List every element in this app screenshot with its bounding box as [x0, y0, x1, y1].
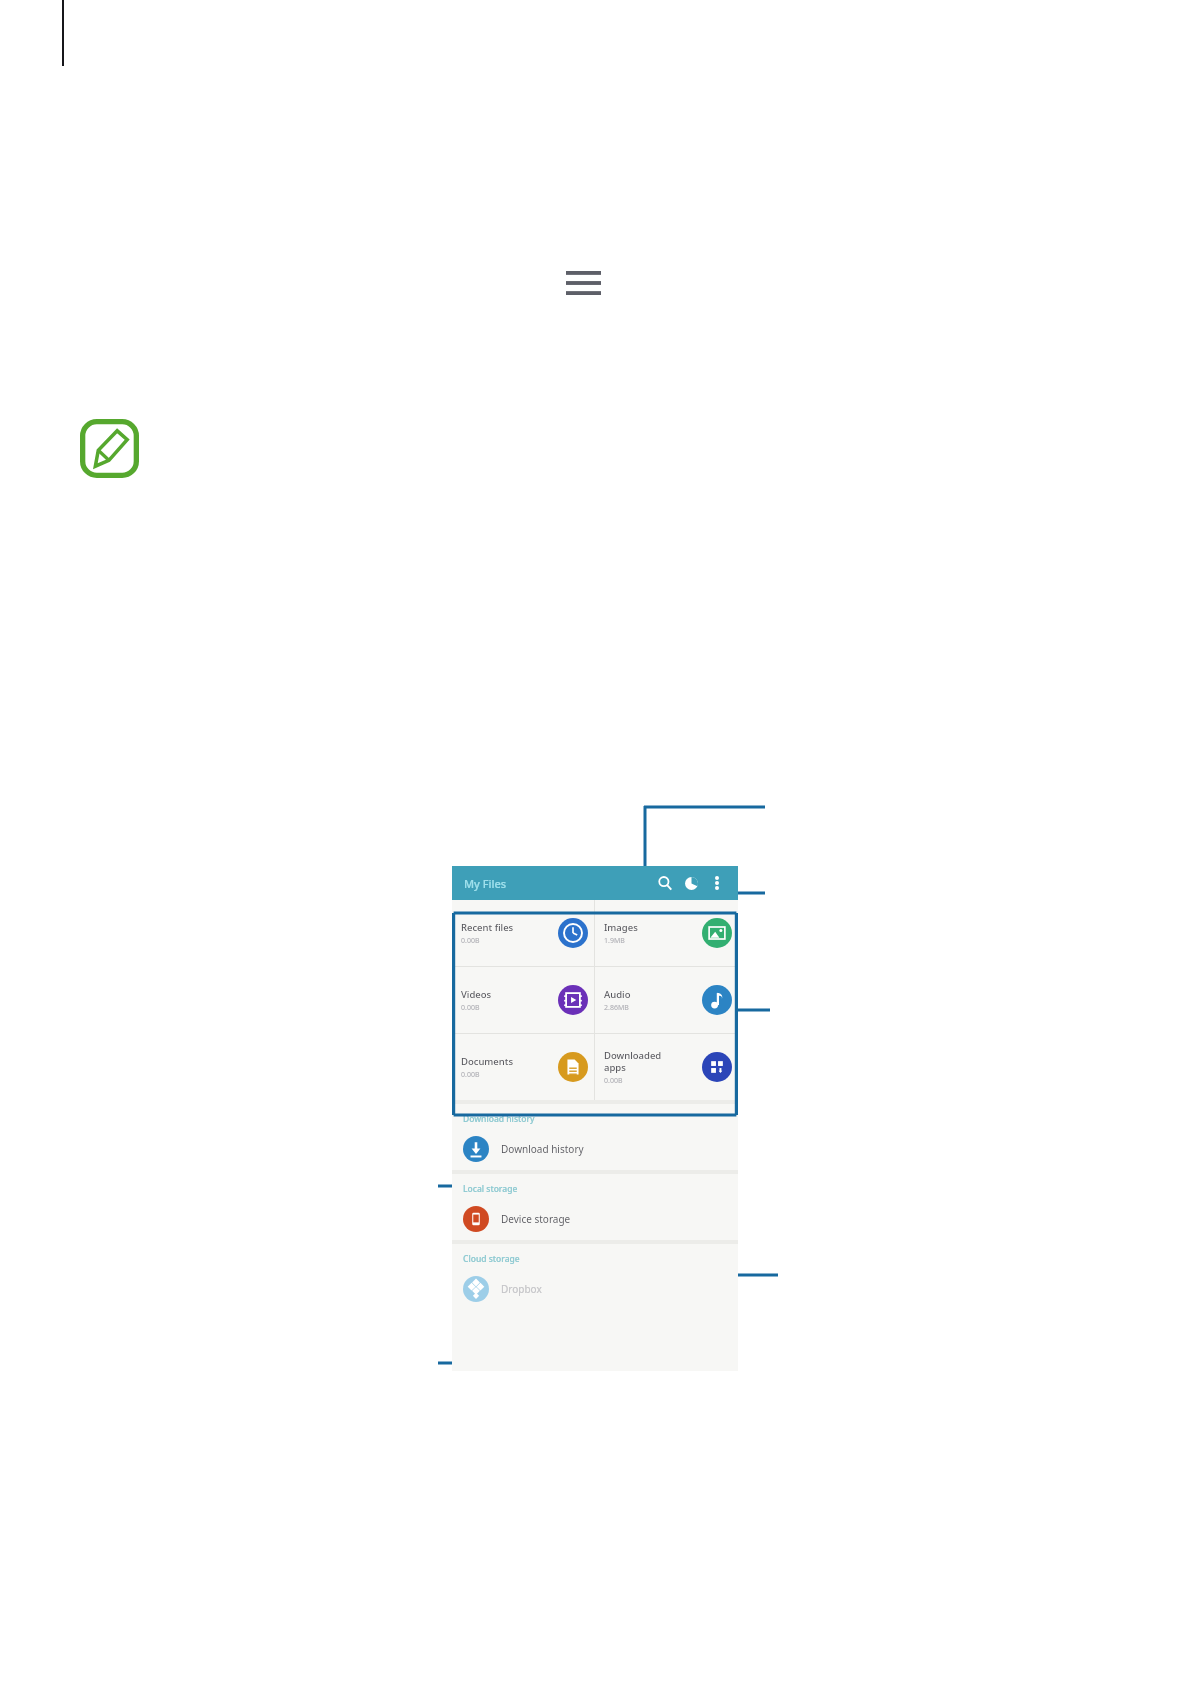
staticText: 0.00B — [461, 1070, 480, 1080]
staticText: Audio — [604, 988, 631, 1001]
staticText: Download history — [463, 1113, 535, 1125]
staticText: 1.9MB — [604, 936, 625, 946]
staticText: Recent files — [461, 921, 514, 934]
button[interactable]: Audio — [595, 967, 738, 1033]
button[interactable]: Dropbox — [452, 1268, 738, 1310]
staticText: Download history — [501, 1142, 584, 1156]
button[interactable]: Download history — [452, 1128, 738, 1170]
button[interactable]: Storage usage — [678, 870, 704, 896]
button[interactable]: Videos — [452, 967, 594, 1033]
staticText: Documents — [461, 1055, 514, 1068]
button[interactable]: Search — [652, 870, 678, 896]
staticText: 0.00B — [604, 1076, 623, 1086]
button[interactable]: Recent files — [452, 900, 594, 966]
staticText: 0.00B — [461, 936, 480, 946]
button[interactable]: More options — [704, 870, 730, 896]
staticText: 2.86MB — [604, 1003, 629, 1013]
staticText: Device storage — [501, 1212, 571, 1226]
staticText: Videos — [461, 988, 492, 1001]
button[interactable]: Device storage — [452, 1198, 738, 1240]
staticText: Images — [604, 921, 638, 934]
staticText: Dropbox — [501, 1282, 542, 1296]
staticText: Local storage — [463, 1183, 518, 1195]
staticText: My Files — [464, 876, 507, 891]
button[interactable]: Menu — [566, 271, 601, 295]
staticText: 0.00B — [461, 1003, 480, 1013]
staticText: Cloud storage — [463, 1253, 520, 1265]
button[interactable]: Images — [595, 900, 738, 966]
button[interactable]: Documents — [452, 1034, 594, 1100]
button[interactable]: Downloaded apps — [595, 1034, 738, 1100]
staticText: Downloaded apps — [604, 1049, 662, 1074]
